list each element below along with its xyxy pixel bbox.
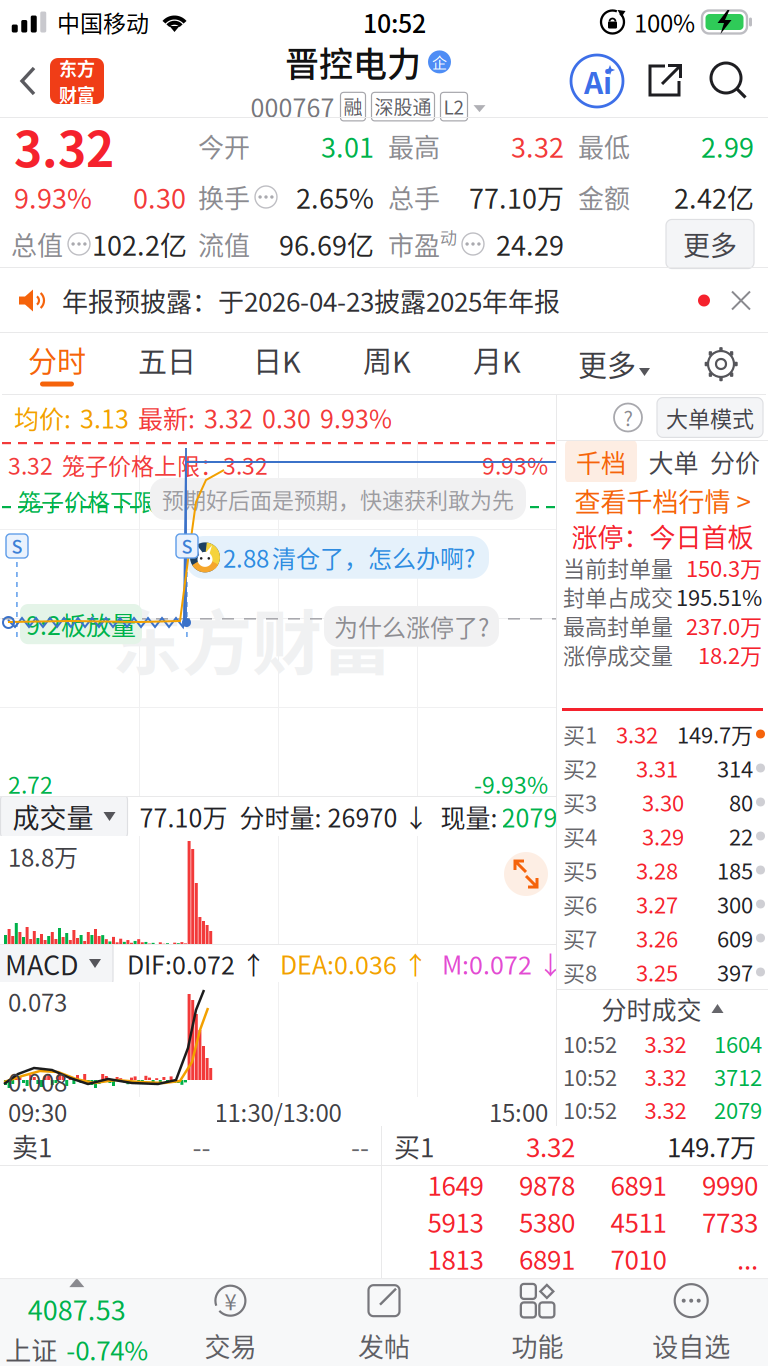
staticText: 77.10万 (469, 177, 564, 217)
staticText: 397 (717, 956, 753, 988)
button[interactable]: 发帖 (307, 1282, 461, 1364)
staticText: S (181, 533, 192, 559)
staticText: Ai (584, 59, 612, 103)
button[interactable]: 大单 (648, 443, 698, 480)
button[interactable]: 更多 (552, 333, 676, 395)
staticText: 市盈 (388, 225, 440, 263)
staticText: 3.29 (642, 820, 684, 852)
staticText: 上证 (5, 1330, 57, 1366)
button[interactable]: 买7 (557, 921, 768, 955)
button[interactable]: 买4 (557, 819, 768, 853)
staticText: 15:00 (489, 1094, 548, 1129)
staticText: 分时成交 (601, 990, 701, 1027)
button[interactable]: 分时成交 (557, 990, 768, 1027)
staticText: 分时量: 26970 ↓ (239, 798, 428, 835)
button[interactable]: 成交量 (0, 793, 127, 840)
button[interactable]: 买8 (557, 955, 768, 989)
staticText: 10:52 (563, 1061, 617, 1092)
staticText: 3.26 (636, 922, 678, 954)
button[interactable]: 日K (222, 333, 332, 395)
staticText: S (11, 533, 22, 559)
button[interactable]: 买3 (557, 785, 768, 819)
button[interactable]: 设自选 (614, 1282, 768, 1364)
staticText: 日K (253, 339, 301, 381)
staticText: 7733 (702, 1203, 758, 1240)
button[interactable]: 查看千档行情 > (557, 482, 768, 519)
button[interactable]: AI 助手 (562, 44, 632, 118)
button[interactable]: 分享 (632, 44, 698, 118)
staticText: 周K (363, 339, 411, 381)
staticText: 动 (440, 225, 457, 249)
staticText: 查看千档行情 > (574, 482, 750, 519)
button[interactable]: 更多 (666, 219, 754, 269)
button[interactable]: 帮助 (613, 402, 643, 432)
button[interactable]: MACD (0, 940, 113, 987)
button[interactable]: 大单模式 (657, 398, 763, 437)
staticText: 设自选 (652, 1327, 730, 1364)
staticText: 18.2万 (698, 639, 762, 670)
staticText: 金额 (578, 178, 630, 216)
staticText: 晋控电力 (285, 37, 421, 86)
staticText: DIF:0.072 ↑ (127, 945, 266, 982)
staticText: 5380 (519, 1203, 575, 1240)
staticText: 3.32 (14, 111, 114, 181)
button[interactable]: 买2 (557, 751, 768, 785)
staticText: 总值 (11, 225, 63, 263)
staticText: 东方财富 (112, 588, 392, 689)
staticText: 买3 (563, 786, 597, 818)
staticText: 4087.53 (28, 1289, 126, 1328)
staticText: 分价 (710, 443, 760, 480)
staticText: 2.88 (223, 540, 269, 575)
staticText: -0.74% (66, 1330, 148, 1366)
staticText: 3.31 (636, 752, 678, 784)
staticText: 买7 (563, 922, 597, 954)
staticText: 10:52 (563, 1028, 617, 1059)
button[interactable]: 年报预披露：于2026-04-23披露2025年年报 (0, 268, 768, 333)
button[interactable]: 4087.53 (0, 1278, 154, 1366)
staticText: 东方 (59, 55, 95, 81)
button[interactable]: 搜索 (698, 44, 760, 118)
button[interactable]: 买6 (557, 887, 768, 921)
staticText: 当前封单量 (563, 552, 673, 583)
button[interactable]: 五日 (112, 333, 222, 395)
staticText: 现量: (440, 798, 497, 835)
staticText: 102.2亿 (92, 224, 187, 264)
staticText: 100% (634, 5, 695, 39)
staticText: MACD (5, 944, 79, 983)
staticText: 2.42亿 (674, 177, 754, 217)
staticText: 今开 (198, 127, 250, 165)
button[interactable]: 千档 (565, 439, 637, 484)
staticText: 300 (717, 888, 753, 920)
staticText: 笼子价格上限：3.32 (62, 448, 268, 481)
button[interactable]: 功能 (461, 1282, 614, 1364)
button[interactable]: 全屏 (504, 852, 548, 896)
button[interactable]: 设置 (676, 333, 766, 395)
staticText: 3.32 (204, 399, 253, 436)
staticText: 3.13 (80, 399, 129, 436)
button[interactable]: 分价 (710, 443, 760, 480)
button[interactable]: 月K (442, 333, 552, 395)
staticText: 22 (729, 820, 753, 852)
staticText: 交易 (204, 1327, 256, 1364)
staticText: 分时 (28, 339, 86, 381)
button[interactable]: 买5 (557, 853, 768, 887)
button[interactable]: 买1 (557, 717, 768, 751)
button[interactable]: ¥ (154, 1282, 307, 1364)
button[interactable]: 返回 (0, 44, 50, 118)
staticText: 0.008 (8, 1064, 67, 1099)
staticText: 预期好后面是预期，快速获利敢为先 (162, 483, 514, 515)
staticText: 最高封单量 (563, 610, 673, 641)
staticText: 9:2板放量 (26, 606, 136, 642)
staticText: 卖1 (12, 1127, 52, 1165)
staticText: 月K (473, 339, 521, 381)
staticText: 企 (432, 51, 447, 73)
staticText: 封单占成交 (563, 581, 673, 612)
staticText: 涨停：今日首板 (571, 517, 753, 555)
staticText: 9.93% (482, 448, 548, 481)
button[interactable]: 东方财富 (50, 58, 104, 104)
staticText: 买1 (563, 718, 597, 750)
staticText: 9.93% (14, 177, 92, 217)
staticText: 流值 (198, 225, 250, 263)
button[interactable]: 分时 (2, 333, 112, 395)
button[interactable]: 周K (332, 333, 442, 395)
